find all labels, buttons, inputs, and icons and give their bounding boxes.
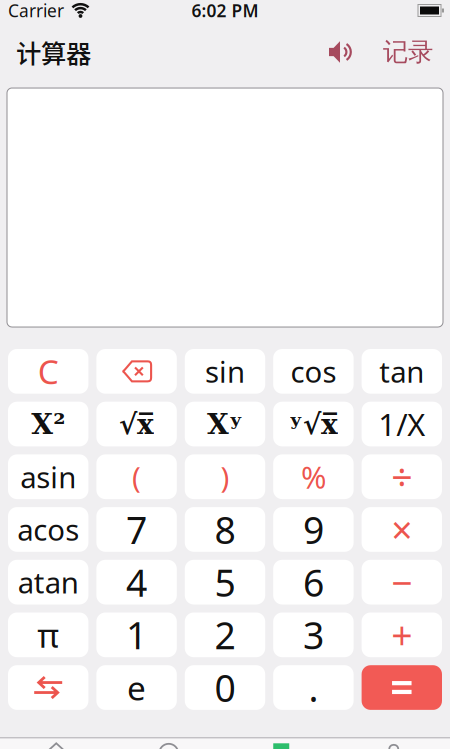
staticText: 4: [126, 557, 147, 607]
button[interactable]: X²: [8, 402, 88, 446]
staticText: acos: [17, 510, 79, 549]
staticText: ×: [391, 505, 412, 554]
staticText: ʸ√x̅: [289, 408, 338, 440]
staticText: 1: [126, 610, 147, 660]
button[interactable]: Calculator: [225, 743, 337, 749]
staticText: 记录: [383, 36, 433, 67]
staticText: 6: [303, 557, 324, 607]
button[interactable]: 4: [96, 560, 177, 604]
staticText: X²: [31, 408, 65, 440]
button[interactable]: ÷: [362, 454, 442, 499]
button[interactable]: asin: [8, 454, 88, 499]
staticText: 2: [214, 610, 235, 660]
staticText: e: [127, 665, 146, 710]
button[interactable]: Equals: [362, 665, 442, 710]
button[interactable]: 9: [273, 507, 354, 552]
staticText: 9: [303, 505, 324, 554]
staticText: %: [301, 456, 326, 497]
staticText: 6:02 PM: [191, 0, 258, 22]
staticText: √x̅: [119, 408, 154, 440]
button[interactable]: −: [362, 560, 442, 604]
button[interactable]: tan: [362, 349, 442, 394]
staticText: C: [38, 349, 59, 393]
staticText: 1/X: [378, 404, 425, 444]
button[interactable]: ʸ√x̅: [273, 402, 354, 446]
button[interactable]: Me: [337, 743, 450, 749]
button[interactable]: acos: [8, 507, 88, 552]
button[interactable]: History: [112, 743, 225, 749]
button[interactable]: 2: [185, 612, 265, 657]
button[interactable]: π: [8, 612, 88, 657]
button[interactable]: 3: [273, 612, 354, 657]
button[interactable]: (: [96, 454, 177, 499]
button[interactable]: √x̅: [96, 402, 177, 446]
button[interactable]: cos: [273, 349, 354, 394]
button[interactable]: 7: [96, 507, 177, 552]
button[interactable]: .: [273, 665, 354, 710]
staticText: 5: [214, 557, 235, 607]
button[interactable]: atan: [8, 560, 88, 604]
staticText: Xʸ: [207, 408, 243, 440]
staticText: 0: [214, 663, 235, 712]
staticText: ): [220, 457, 229, 496]
button[interactable]: ): [185, 454, 265, 499]
button[interactable]: sin: [185, 349, 265, 394]
button[interactable]: +: [362, 612, 442, 657]
button[interactable]: C: [8, 349, 88, 394]
button[interactable]: 1/X: [362, 402, 442, 446]
button[interactable]: 记录: [383, 36, 433, 67]
staticText: 7: [126, 505, 147, 554]
button[interactable]: Xʸ: [185, 402, 265, 446]
button[interactable]: 6: [273, 560, 354, 604]
staticText: sin: [205, 352, 245, 391]
staticText: π: [37, 613, 59, 657]
staticText: (: [132, 457, 141, 496]
button[interactable]: 8: [185, 507, 265, 552]
staticText: ÷: [391, 452, 412, 502]
staticText: 计算器: [16, 34, 91, 70]
button[interactable]: ×: [362, 507, 442, 552]
staticText: cos: [290, 352, 336, 391]
button[interactable]: Swap: [8, 665, 88, 710]
button[interactable]: e: [96, 665, 177, 710]
button[interactable]: Home: [0, 743, 112, 749]
staticText: +: [391, 610, 412, 660]
button[interactable]: Delete: [96, 349, 177, 394]
staticText: −: [391, 557, 412, 607]
staticText: Carrier: [8, 0, 64, 22]
button[interactable]: 0: [185, 665, 265, 710]
staticText: 3: [303, 610, 324, 660]
staticText: atan: [18, 563, 79, 602]
button[interactable]: 5: [185, 560, 265, 604]
button[interactable]: 1: [96, 612, 177, 657]
staticText: 8: [214, 505, 235, 554]
staticText: tan: [379, 352, 424, 391]
button[interactable]: Sound: [329, 40, 357, 63]
button[interactable]: %: [273, 454, 354, 499]
staticText: .: [308, 663, 318, 712]
staticText: asin: [20, 457, 76, 496]
